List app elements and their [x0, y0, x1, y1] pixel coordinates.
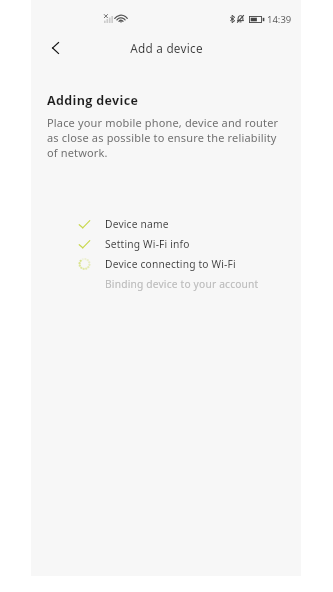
staticText: Device name: [105, 217, 169, 231]
button[interactable]: Device name: [78, 214, 169, 234]
staticText: Add a device: [130, 40, 203, 56]
staticText: Binding device to your account: [105, 277, 259, 291]
button[interactable]: Device connecting to Wi-Fi: [78, 254, 236, 274]
staticText: Adding device: [47, 92, 139, 109]
button[interactable]: Back: [43, 36, 67, 60]
staticText: Place your mobile phone, device and rout…: [47, 115, 281, 160]
staticText: 14:39: [267, 13, 292, 26]
button[interactable]: Binding device to your account: [78, 274, 259, 294]
staticText: Device connecting to Wi-Fi: [105, 257, 236, 271]
staticText: Setting Wi-Fi info: [105, 237, 190, 251]
button[interactable]: Setting Wi-Fi info: [78, 234, 190, 254]
